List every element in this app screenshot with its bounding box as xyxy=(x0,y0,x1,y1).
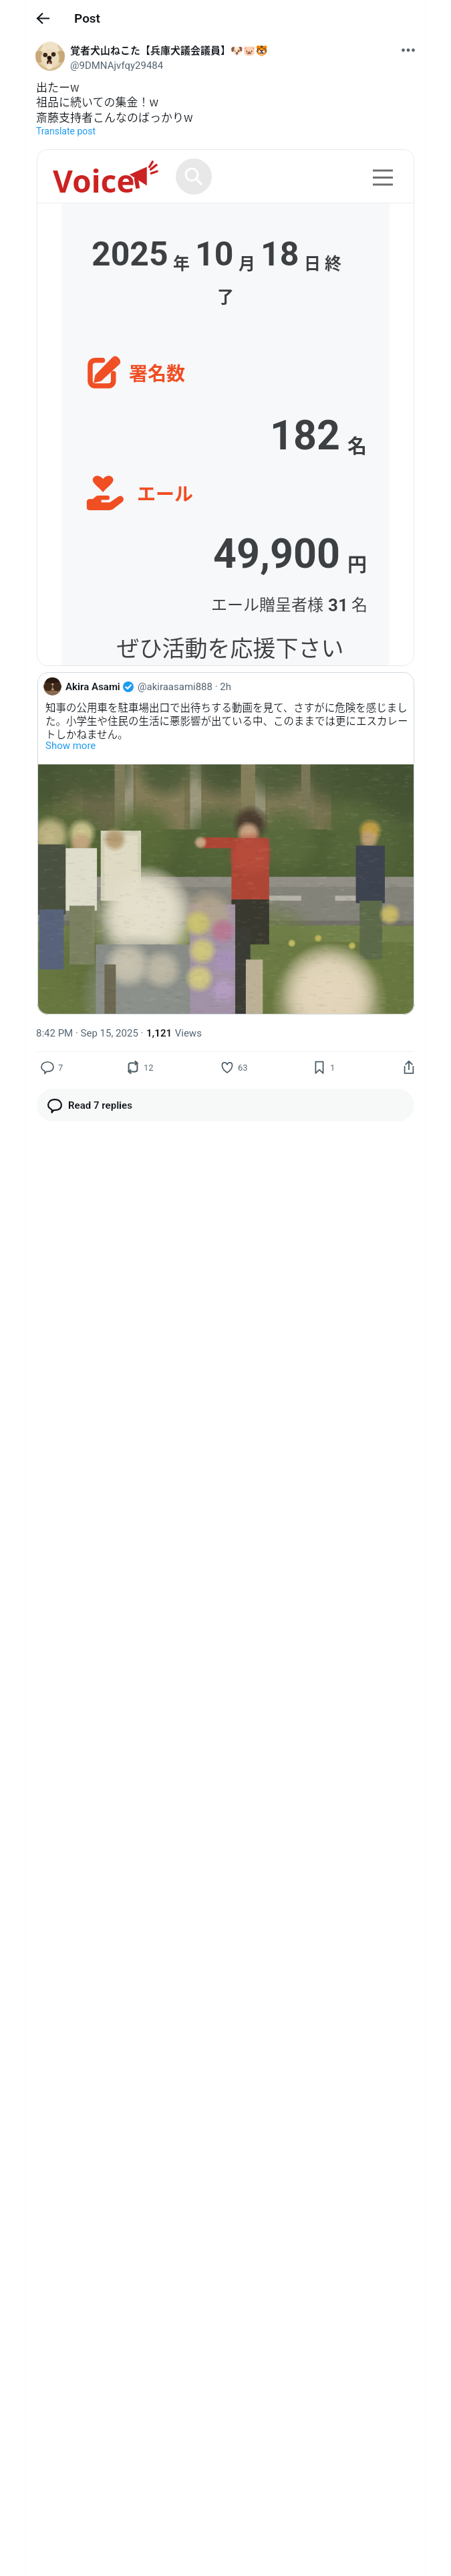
staticText: Akira Asami xyxy=(65,681,120,693)
staticText: 覚者犬山ねこた【兵庫犬議会議員】🐶🐷🐯 xyxy=(70,43,269,58)
staticText: 7 xyxy=(58,1063,63,1073)
button[interactable]: Share xyxy=(396,1054,422,1081)
staticText: 出たーw 祖品に続いての集金！w 斎藤支持者こんなのばっかりw xyxy=(36,78,193,125)
button[interactable]: Back xyxy=(29,5,56,31)
staticText: 12 xyxy=(144,1063,154,1073)
button[interactable]: Voice xyxy=(37,149,414,666)
staticText: Translate post xyxy=(36,126,96,136)
button[interactable]: Translate post xyxy=(36,126,96,136)
staticText: Voice xyxy=(53,160,135,202)
button[interactable]: Post xyxy=(74,11,101,25)
staticText: 了 xyxy=(61,284,390,308)
button[interactable]: Profile photo xyxy=(35,41,65,71)
button[interactable]: Voice xyxy=(53,160,135,202)
staticText: @akiraasami888 · 2h xyxy=(138,681,232,693)
staticText: エール贈呈者様 xyxy=(211,592,323,615)
staticText: Post xyxy=(74,11,101,25)
staticText: Show more xyxy=(45,740,96,752)
staticText: 年 xyxy=(173,250,190,274)
staticText: 2025 xyxy=(92,235,168,274)
button[interactable]: Reply xyxy=(35,1054,69,1081)
button[interactable]: More options xyxy=(394,35,423,65)
button[interactable]: Bookmark xyxy=(307,1054,341,1081)
button[interactable]: Search xyxy=(176,158,212,195)
staticText: エール xyxy=(137,479,194,507)
staticText: 月 xyxy=(239,250,256,274)
staticText: 1,121 xyxy=(146,1027,172,1039)
staticText: 知事の公用車を駐車場出口で出待ちする動画を見て、さすがに危険を感じました。小学生… xyxy=(45,700,410,741)
staticText: Read 7 replies xyxy=(68,1099,132,1111)
staticText: Views xyxy=(172,1027,202,1039)
staticText: ぜひ活動を応援下さい xyxy=(66,631,394,663)
staticText: 円 xyxy=(347,549,367,577)
staticText: 182 xyxy=(270,411,340,459)
button[interactable]: Menu xyxy=(364,158,402,196)
staticText: 31 xyxy=(328,595,348,615)
staticText: 終 xyxy=(325,250,342,274)
staticText: 10 xyxy=(195,235,234,274)
staticText: 18 xyxy=(261,235,299,274)
staticText: 名 xyxy=(351,592,367,615)
button[interactable]: Akira Asami xyxy=(37,672,414,1014)
button[interactable]: Like xyxy=(215,1054,253,1081)
button[interactable]: Show more xyxy=(45,740,96,752)
staticText: 名 xyxy=(347,431,367,459)
staticText: 1 xyxy=(330,1063,335,1073)
staticText: 63 xyxy=(238,1063,248,1073)
staticText: 8:42 PM · Sep 15, 2025 · xyxy=(36,1027,146,1039)
button[interactable]: Read 7 replies xyxy=(37,1089,414,1121)
button[interactable]: Repost xyxy=(121,1054,159,1081)
staticText: 署名数 xyxy=(129,359,186,387)
staticText: 日 xyxy=(304,250,321,274)
staticText: 49,900 xyxy=(213,530,340,577)
staticText: @9DMNAjvfqy29484 xyxy=(70,60,164,72)
